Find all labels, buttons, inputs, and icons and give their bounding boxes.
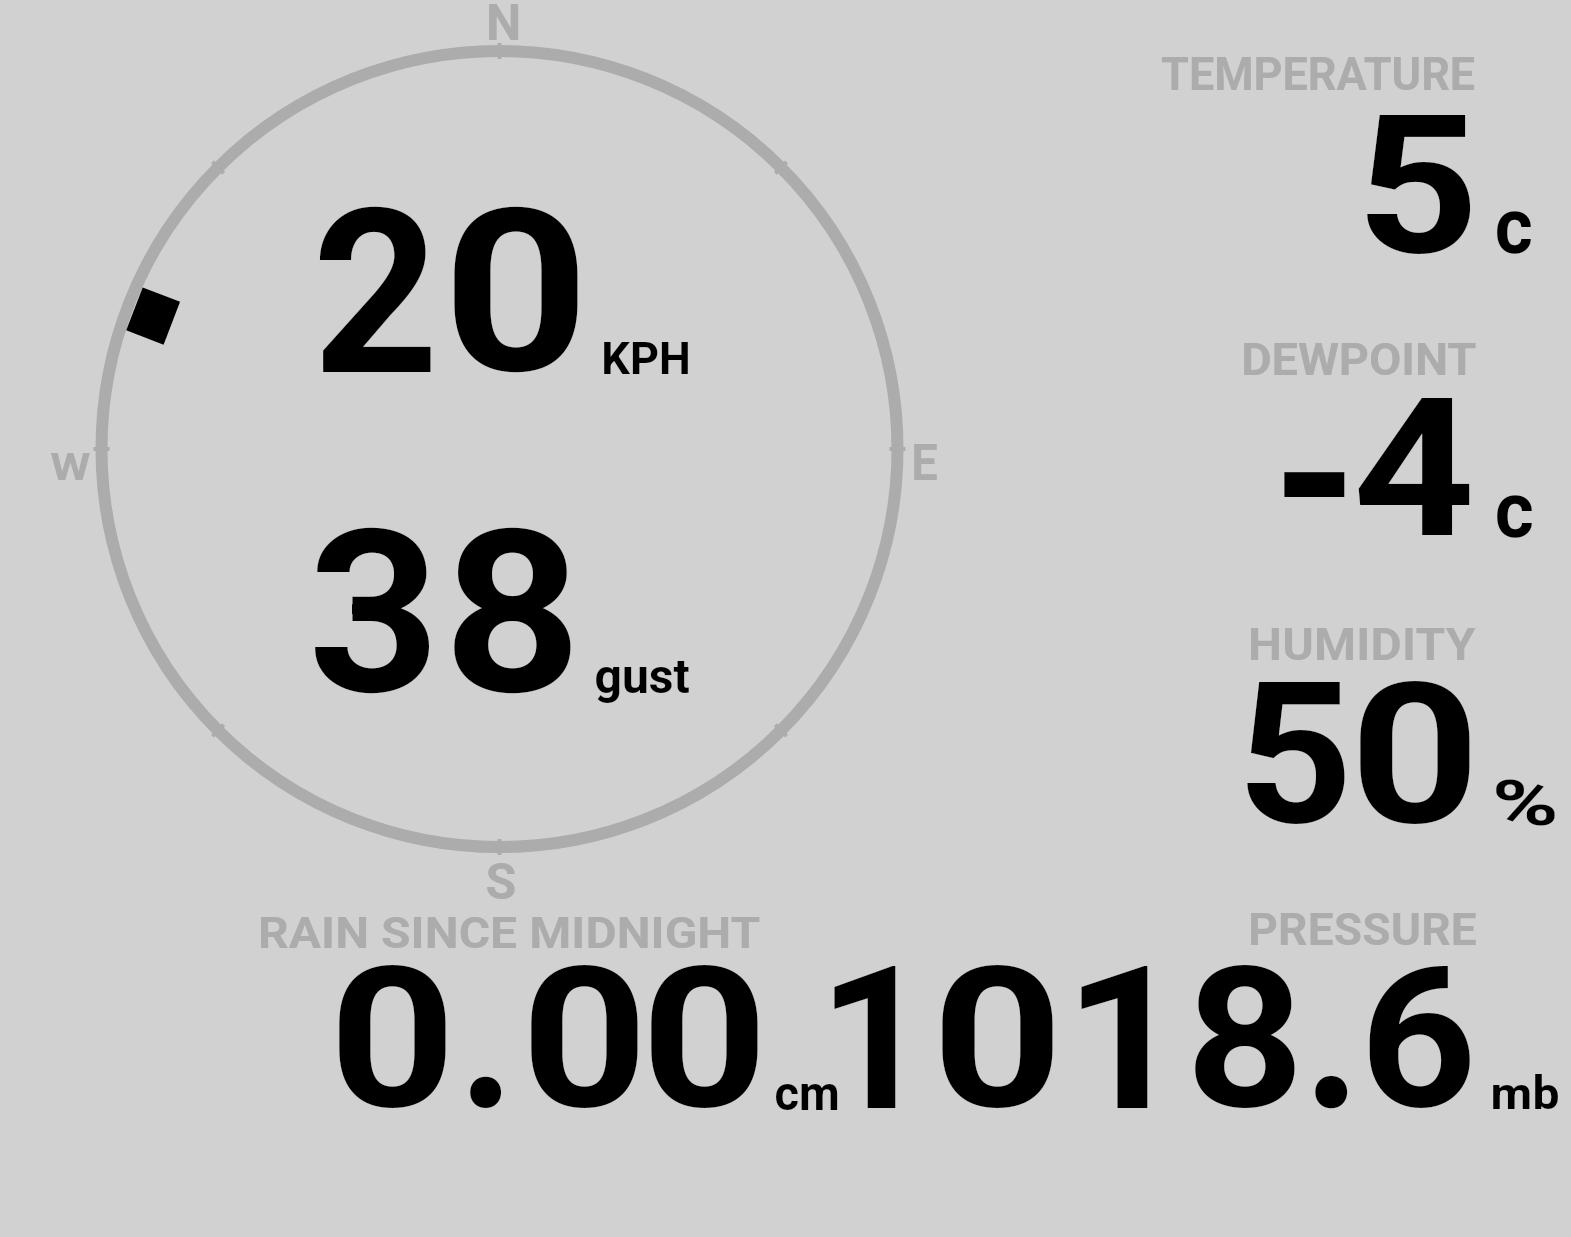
button[interactable]: Rain since midnight 0.00 cm [240,900,860,1140]
button[interactable]: Humidity 50 percent [1100,605,1570,870]
button[interactable]: Wind 20 KPH, gust 38, from west north we… [60,20,960,900]
button[interactable]: Dewpoint -4 degrees C [1100,320,1570,590]
button[interactable]: Pressure 1018.6 mb [865,900,1570,1140]
button[interactable]: Temperature 5 degrees C [1100,30,1570,300]
